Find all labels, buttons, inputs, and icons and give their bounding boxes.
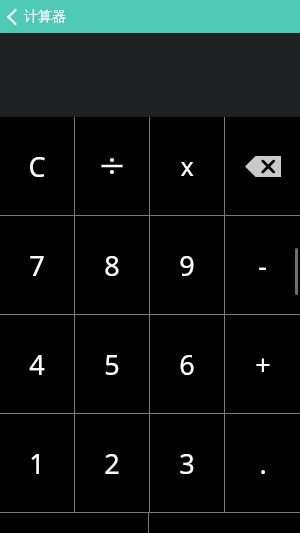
- button[interactable]: +: [225, 315, 300, 413]
- button[interactable]: C: [0, 117, 74, 215]
- button[interactable]: 2: [75, 414, 149, 512]
- button[interactable]: 1: [0, 414, 74, 512]
- button[interactable]: 4: [0, 315, 74, 413]
- button[interactable]: 3: [150, 414, 224, 512]
- button[interactable]: -: [225, 216, 300, 314]
- staticText: 4: [29, 346, 45, 383]
- staticText: x: [180, 149, 194, 183]
- staticText: -: [258, 247, 267, 284]
- staticText: .: [259, 445, 267, 482]
- button[interactable]: .: [225, 414, 300, 512]
- button[interactable]: 8: [75, 216, 149, 314]
- staticText: C: [28, 148, 46, 185]
- staticText: 1: [29, 445, 45, 482]
- button[interactable]: Divide: [75, 117, 149, 215]
- button[interactable]: 6: [150, 315, 224, 413]
- staticText: 2: [104, 445, 120, 482]
- staticText: 6: [179, 346, 195, 383]
- staticText: 5: [104, 346, 120, 383]
- button[interactable]: x: [150, 117, 224, 215]
- button[interactable]: Back: [0, 0, 24, 33]
- button[interactable]: 5: [75, 315, 149, 413]
- staticText: 8: [104, 247, 120, 284]
- button[interactable]: Backspace: [225, 117, 300, 215]
- staticText: 计算器: [24, 8, 66, 26]
- staticText: 7: [29, 247, 45, 284]
- button[interactable]: 7: [0, 216, 74, 314]
- staticText: 3: [179, 445, 195, 482]
- staticText: 9: [179, 247, 195, 284]
- button[interactable]: 9: [150, 216, 224, 314]
- staticText: +: [255, 346, 271, 383]
